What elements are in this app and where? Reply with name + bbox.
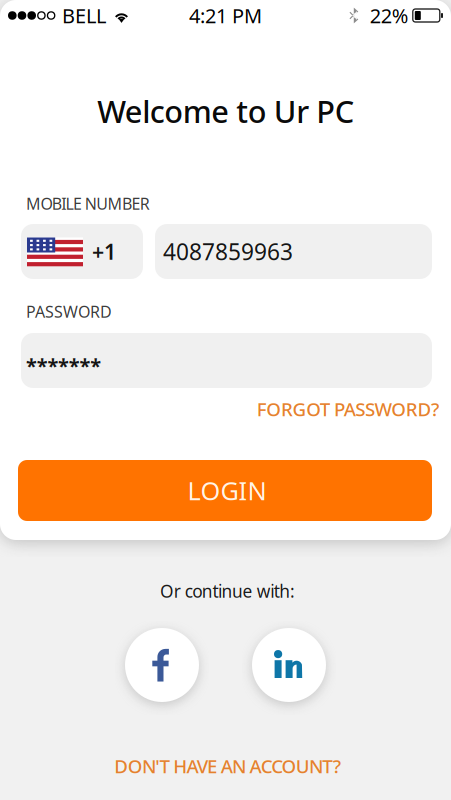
staticText: DON'T HAVE AN ACCOUNT? xyxy=(114,754,341,778)
button[interactable]: DON'T HAVE AN ACCOUNT? xyxy=(112,753,339,779)
staticText: 4087859963 xyxy=(163,236,293,266)
staticText: Or continue with: xyxy=(160,579,295,602)
button[interactable]: Country code +1 xyxy=(21,224,143,279)
button[interactable]: Continue with Facebook xyxy=(125,628,199,702)
staticText: +1 xyxy=(92,237,116,266)
staticText: FORGOT PASSWORD? xyxy=(257,397,439,421)
button[interactable]: LOGIN xyxy=(18,460,432,521)
staticText: ******* xyxy=(26,352,101,379)
staticText: LOGIN xyxy=(187,474,266,507)
button[interactable]: Mobile number xyxy=(155,224,432,279)
button[interactable]: Password xyxy=(21,333,432,388)
staticText: PASSWORD xyxy=(26,301,112,322)
staticText: 4:21 PM xyxy=(189,2,262,29)
staticText: Welcome to Ur PC xyxy=(97,91,354,131)
button[interactable]: Continue with LinkedIn xyxy=(252,628,326,702)
staticText: 22% xyxy=(370,2,409,29)
button[interactable]: FORGOT PASSWORD? xyxy=(257,398,439,420)
staticText: BELL xyxy=(62,2,106,29)
staticText: MOBILE NUMBER xyxy=(26,193,150,214)
